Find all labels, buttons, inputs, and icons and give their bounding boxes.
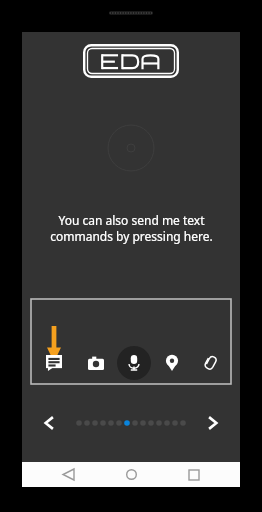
button[interactable]: Previous: [36, 410, 62, 436]
button[interactable]: Location: [159, 350, 185, 376]
staticText: You can also send me text commands by pr…: [50, 212, 213, 244]
button[interactable]: Camera: [83, 350, 109, 376]
button[interactable]: Attach file: [201, 350, 221, 376]
button[interactable]: EDA logo: [83, 44, 179, 78]
button[interactable]: Send text message: [41, 350, 67, 376]
button[interactable]: Voice input: [117, 346, 151, 380]
button[interactable]: Recent apps: [177, 462, 211, 487]
button[interactable]: Next: [200, 410, 226, 436]
button[interactable]: Back: [51, 462, 85, 487]
button[interactable]: Home: [114, 462, 148, 487]
